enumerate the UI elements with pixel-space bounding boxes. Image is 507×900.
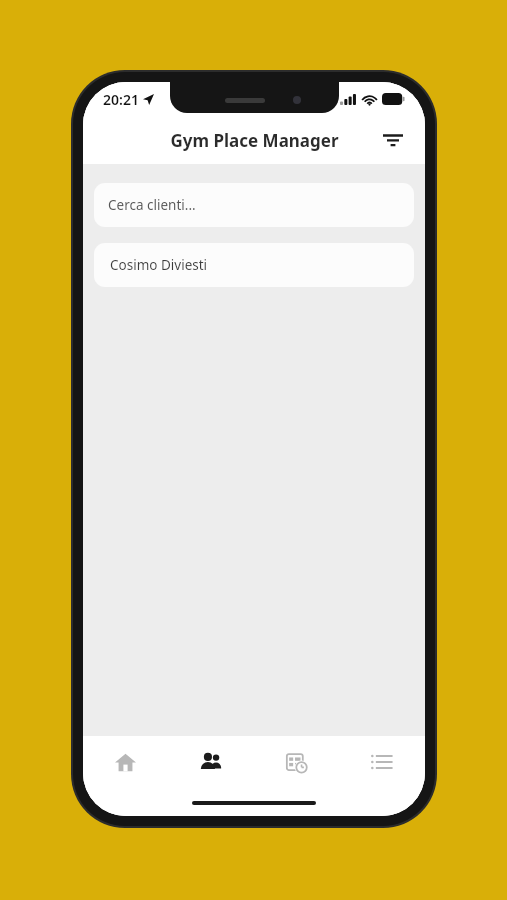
button[interactable]: Cosimo Diviesti bbox=[94, 243, 414, 287]
staticText: 20:21 bbox=[103, 90, 139, 109]
button[interactable]: Cerca clienti... bbox=[94, 183, 414, 227]
button[interactable]: List bbox=[339, 736, 425, 788]
button[interactable]: Clients bbox=[168, 736, 253, 788]
staticText: Cerca clienti... bbox=[108, 196, 196, 214]
staticText: Gym Place Manager bbox=[170, 129, 339, 152]
button[interactable]: Schedule bbox=[253, 736, 339, 788]
staticText: Cosimo Diviesti bbox=[110, 256, 208, 274]
button[interactable]: Home bbox=[83, 736, 168, 788]
button[interactable]: Filter bbox=[373, 120, 413, 160]
